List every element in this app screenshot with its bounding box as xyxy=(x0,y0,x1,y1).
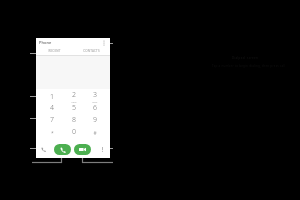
staticText: 5 xyxy=(72,103,76,113)
button[interactable]: 9 xyxy=(84,115,105,127)
button[interactable]: # xyxy=(84,127,105,139)
button[interactable]: 2 xyxy=(63,90,84,103)
staticText: Phone xyxy=(39,40,52,45)
button[interactable]: 7 xyxy=(41,115,63,127)
button[interactable]: 8 xyxy=(63,115,84,127)
staticText: 1 xyxy=(50,92,54,102)
button[interactable]: Call xyxy=(54,144,71,155)
staticText: 6 xyxy=(93,103,97,113)
staticText: 9 xyxy=(93,115,97,125)
staticText: ABC xyxy=(71,100,77,103)
staticText: 8 xyxy=(72,115,76,125)
button[interactable]: 3 xyxy=(84,90,105,103)
button[interactable]: More options xyxy=(101,40,107,46)
button[interactable]: 1 xyxy=(41,90,63,103)
staticText: 4 xyxy=(50,103,54,113)
staticText: RECENT xyxy=(48,49,61,53)
staticText: Dialpad screen xyxy=(232,56,259,60)
button[interactable]: 6 xyxy=(84,103,105,115)
staticText: 3 xyxy=(93,90,97,100)
staticText: DEF xyxy=(92,100,98,103)
staticText: * xyxy=(51,130,54,137)
staticText: 7 xyxy=(50,115,54,125)
button[interactable]: Video call xyxy=(74,144,91,155)
staticText: # xyxy=(93,130,97,137)
button[interactable]: RECENT xyxy=(36,47,73,55)
staticText: 2 xyxy=(72,90,76,100)
staticText: CONTACTS xyxy=(83,49,100,53)
button[interactable]: Call history xyxy=(39,145,48,154)
button[interactable]: 5 xyxy=(63,103,84,115)
staticText: 0 xyxy=(72,127,76,137)
button[interactable]: 0 xyxy=(63,127,84,139)
button[interactable]: * xyxy=(41,127,63,139)
button[interactable]: 4 xyxy=(41,103,63,115)
button[interactable]: CONTACTS xyxy=(73,47,110,55)
button[interactable]: Backspace xyxy=(98,145,107,154)
